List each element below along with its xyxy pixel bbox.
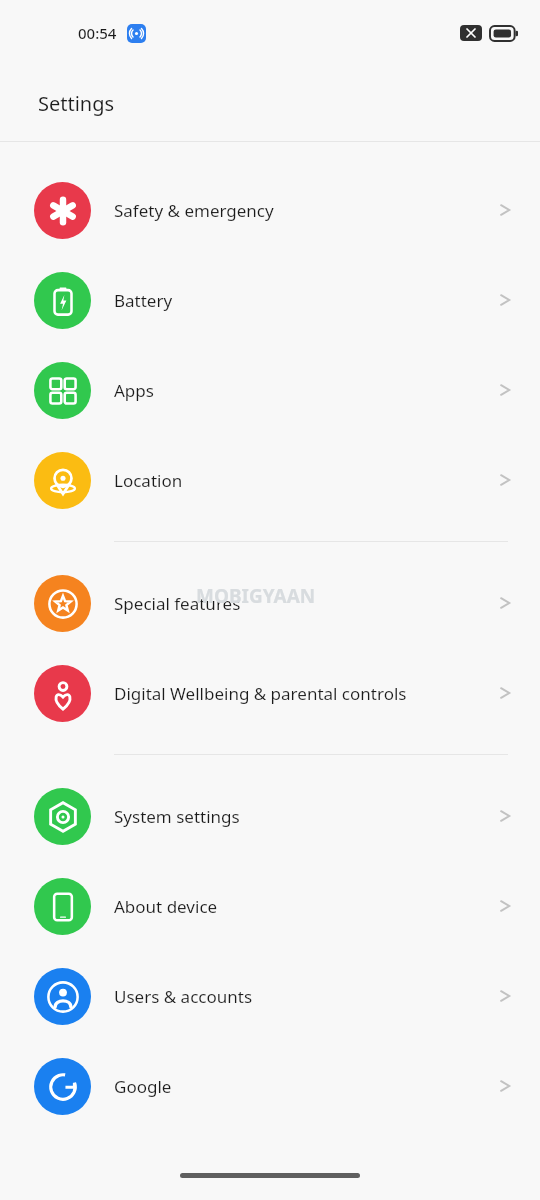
button[interactable]: Apps: [0, 345, 540, 435]
button[interactable]: Digital Wellbeing & parental controls: [0, 648, 540, 738]
button[interactable]: Google: [0, 1041, 540, 1131]
button[interactable]: Safety & emergency: [0, 165, 540, 255]
other: Wi-Fi calling: [127, 24, 146, 43]
staticText: 00:54: [78, 23, 117, 43]
staticText: Digital Wellbeing & parental controls: [114, 682, 488, 705]
staticText: Safety & emergency: [114, 199, 488, 222]
staticText: Google: [114, 1075, 488, 1098]
staticText: MOBIGYAAN: [196, 583, 316, 609]
button[interactable]: Special features: [0, 558, 540, 648]
staticText: About device: [114, 895, 488, 918]
button[interactable]: System settings: [0, 771, 540, 861]
staticText: Special features: [114, 592, 488, 615]
staticText: Apps: [114, 379, 488, 402]
staticText: System settings: [114, 805, 488, 828]
staticText: Location: [114, 469, 488, 492]
staticText: Settings: [38, 90, 115, 117]
button[interactable]: Battery: [0, 255, 540, 345]
button[interactable]: Location: [0, 435, 540, 525]
button[interactable]: Users & accounts: [0, 951, 540, 1041]
staticText: Users & accounts: [114, 985, 488, 1008]
staticText: Battery: [114, 289, 488, 312]
button[interactable]: About device: [0, 861, 540, 951]
